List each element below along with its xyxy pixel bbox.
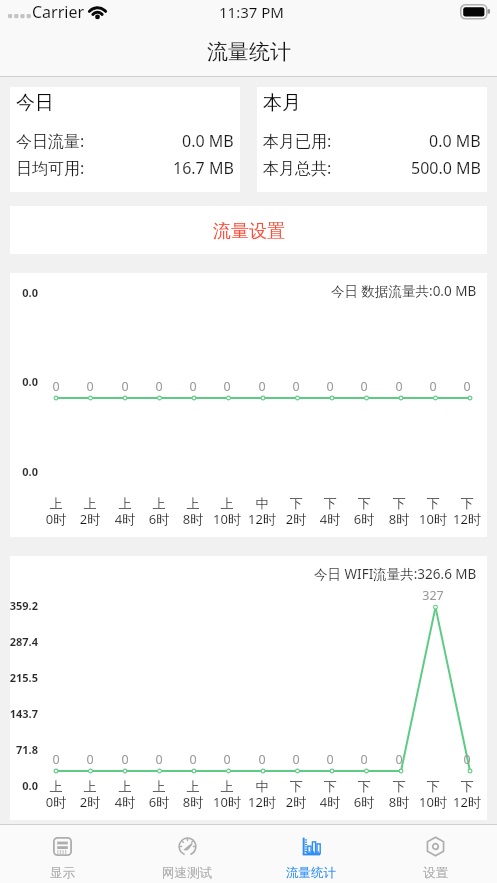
staticText: 2时 xyxy=(72,510,108,528)
staticText: 0.0 xyxy=(0,374,38,389)
staticText: 8时 xyxy=(381,510,417,528)
staticText: 上 xyxy=(141,495,177,511)
staticText: 0.0 xyxy=(0,778,38,793)
staticText: 上 xyxy=(107,495,143,511)
staticText: 流量统计 xyxy=(286,865,336,881)
staticText: 本月 xyxy=(263,91,301,115)
staticText: 0 xyxy=(212,378,242,395)
staticText: 12时 xyxy=(449,793,485,811)
button[interactable]: 设置 xyxy=(373,825,497,883)
staticText: 327 xyxy=(418,587,448,604)
staticText: 0 xyxy=(144,378,174,395)
staticText: 2时 xyxy=(278,793,314,811)
button[interactable]: 网速测试 xyxy=(125,825,249,883)
staticText: 500.0 MB xyxy=(411,157,481,179)
button[interactable]: 流量统计 xyxy=(249,825,373,883)
staticText: Carrier xyxy=(32,1,85,23)
staticText: 0 xyxy=(41,378,71,395)
button[interactable]: 本月 xyxy=(257,87,487,192)
staticText: 0 xyxy=(110,378,140,395)
staticText: 8时 xyxy=(175,510,211,528)
staticText: 上 xyxy=(175,495,211,511)
staticText: 0 xyxy=(349,378,379,395)
staticText: 0 xyxy=(281,751,311,768)
staticText: 上 xyxy=(175,778,211,794)
staticText: 0 xyxy=(315,378,345,395)
staticText: 0 xyxy=(75,378,105,395)
staticText: 上 xyxy=(72,778,108,794)
staticText: 0 xyxy=(110,751,140,768)
staticText: 下 xyxy=(278,778,314,794)
staticText: 0.0 xyxy=(0,285,38,300)
staticText: 16.7 MB xyxy=(173,157,234,179)
staticText: 359.2 xyxy=(0,598,38,613)
staticText: 下 xyxy=(449,495,485,511)
staticText: 流量设置 xyxy=(213,220,285,243)
staticText: 今日 xyxy=(16,91,54,115)
staticText: 网速测试 xyxy=(162,865,212,881)
staticText: 本月已用: xyxy=(263,130,332,152)
staticText: 0.0 xyxy=(0,464,38,479)
staticText: 下 xyxy=(381,495,417,511)
staticText: 0 xyxy=(178,751,208,768)
button[interactable]: 今日 xyxy=(10,87,240,192)
staticText: 上 xyxy=(141,778,177,794)
staticText: 上 xyxy=(209,495,245,511)
staticText: 上 xyxy=(107,778,143,794)
staticText: 0 xyxy=(247,751,277,768)
staticText: 0 xyxy=(144,751,174,768)
staticText: 4时 xyxy=(312,510,348,528)
staticText: 11:37 PM xyxy=(219,2,284,22)
button[interactable]: 显示 xyxy=(0,825,125,883)
staticText: 下 xyxy=(449,778,485,794)
staticText: 今日流量: xyxy=(16,130,85,152)
staticText: 下 xyxy=(415,495,451,511)
staticText: 0 xyxy=(41,751,71,768)
staticText: 日均可用: xyxy=(16,157,85,179)
staticText: 下 xyxy=(415,778,451,794)
staticText: 下 xyxy=(381,778,417,794)
staticText: 下 xyxy=(278,495,314,511)
staticText: 0 xyxy=(384,378,414,395)
staticText: 上 xyxy=(72,495,108,511)
staticText: 0 xyxy=(418,378,448,395)
staticText: 流量统计 xyxy=(207,39,291,65)
staticText: 0 xyxy=(281,378,311,395)
staticText: 4时 xyxy=(312,793,348,811)
staticText: 6时 xyxy=(141,793,177,811)
staticText: 10时 xyxy=(209,510,245,528)
staticText: 显示 xyxy=(50,865,75,881)
staticText: 143.7 xyxy=(0,706,38,721)
staticText: 0 xyxy=(349,751,379,768)
staticText: 0时 xyxy=(38,793,74,811)
staticText: 6时 xyxy=(346,793,382,811)
staticText: 12时 xyxy=(244,510,280,528)
staticText: 上 xyxy=(38,778,74,794)
button[interactable]: 流量设置 xyxy=(10,206,487,254)
staticText: 下 xyxy=(346,778,382,794)
staticText: 中 xyxy=(244,495,280,511)
staticText: 0.0 MB xyxy=(182,130,234,152)
staticText: 8时 xyxy=(175,793,211,811)
staticText: 今日 WIFI流量共:326.6 MB xyxy=(314,565,477,583)
staticText: 215.5 xyxy=(0,670,38,685)
staticText: 0时 xyxy=(38,510,74,528)
staticText: 0 xyxy=(315,751,345,768)
staticText: 中 xyxy=(244,778,280,794)
staticText: 上 xyxy=(38,495,74,511)
staticText: 0 xyxy=(452,751,482,768)
staticText: 2时 xyxy=(72,793,108,811)
staticText: 0.0 MB xyxy=(429,130,481,152)
staticText: 0 xyxy=(212,751,242,768)
staticText: 10时 xyxy=(209,793,245,811)
staticText: 10时 xyxy=(415,793,451,811)
staticText: 287.4 xyxy=(0,634,38,649)
staticText: 12时 xyxy=(244,793,280,811)
staticText: 12时 xyxy=(449,510,485,528)
staticText: 0 xyxy=(247,378,277,395)
staticText: 上 xyxy=(209,778,245,794)
staticText: 2时 xyxy=(278,510,314,528)
staticText: 6时 xyxy=(346,510,382,528)
staticText: 本月总共: xyxy=(263,157,332,179)
staticText: 下 xyxy=(312,495,348,511)
